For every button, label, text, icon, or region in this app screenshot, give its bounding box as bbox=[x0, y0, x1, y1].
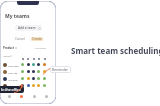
staticText: Cancel bbox=[15, 37, 25, 40]
button[interactable]: Teams bbox=[17, 92, 26, 101]
button[interactable]: Ken Soo bbox=[3, 83, 53, 89]
button[interactable]: Tasks bbox=[30, 92, 39, 101]
staticText: Name bbox=[3, 54, 10, 57]
button[interactable]: Reminder bbox=[52, 67, 69, 72]
button[interactable]: In the office bbox=[1, 87, 21, 92]
button[interactable]: Create bbox=[31, 37, 43, 41]
button[interactable]: Product bbox=[3, 46, 17, 50]
staticText: Ken Soo bbox=[8, 85, 18, 88]
staticText: Smart team scheduling bbox=[71, 45, 160, 56]
staticText: Create bbox=[32, 37, 42, 41]
button[interactable]: Add a team bbox=[18, 26, 41, 30]
button[interactable]: Mark Bell bbox=[3, 62, 53, 68]
staticText: Tom Lee bbox=[8, 71, 18, 74]
staticText: Add a team bbox=[18, 26, 36, 30]
staticText: Reminder bbox=[52, 67, 69, 72]
button[interactable]: Ana Ruiz bbox=[3, 76, 53, 82]
staticText: Product bbox=[3, 46, 14, 50]
staticText: My teams bbox=[5, 13, 30, 20]
staticText: Mark Bell bbox=[8, 64, 19, 67]
button[interactable]: Home bbox=[5, 92, 14, 101]
button[interactable]: Profile bbox=[42, 92, 51, 101]
staticText: In the office bbox=[1, 87, 21, 92]
button[interactable]: Cancel bbox=[15, 37, 25, 40]
staticText: This week bbox=[35, 46, 47, 49]
button[interactable]: Tom Lee bbox=[3, 69, 53, 75]
staticText: Ana Ruiz bbox=[8, 78, 18, 81]
